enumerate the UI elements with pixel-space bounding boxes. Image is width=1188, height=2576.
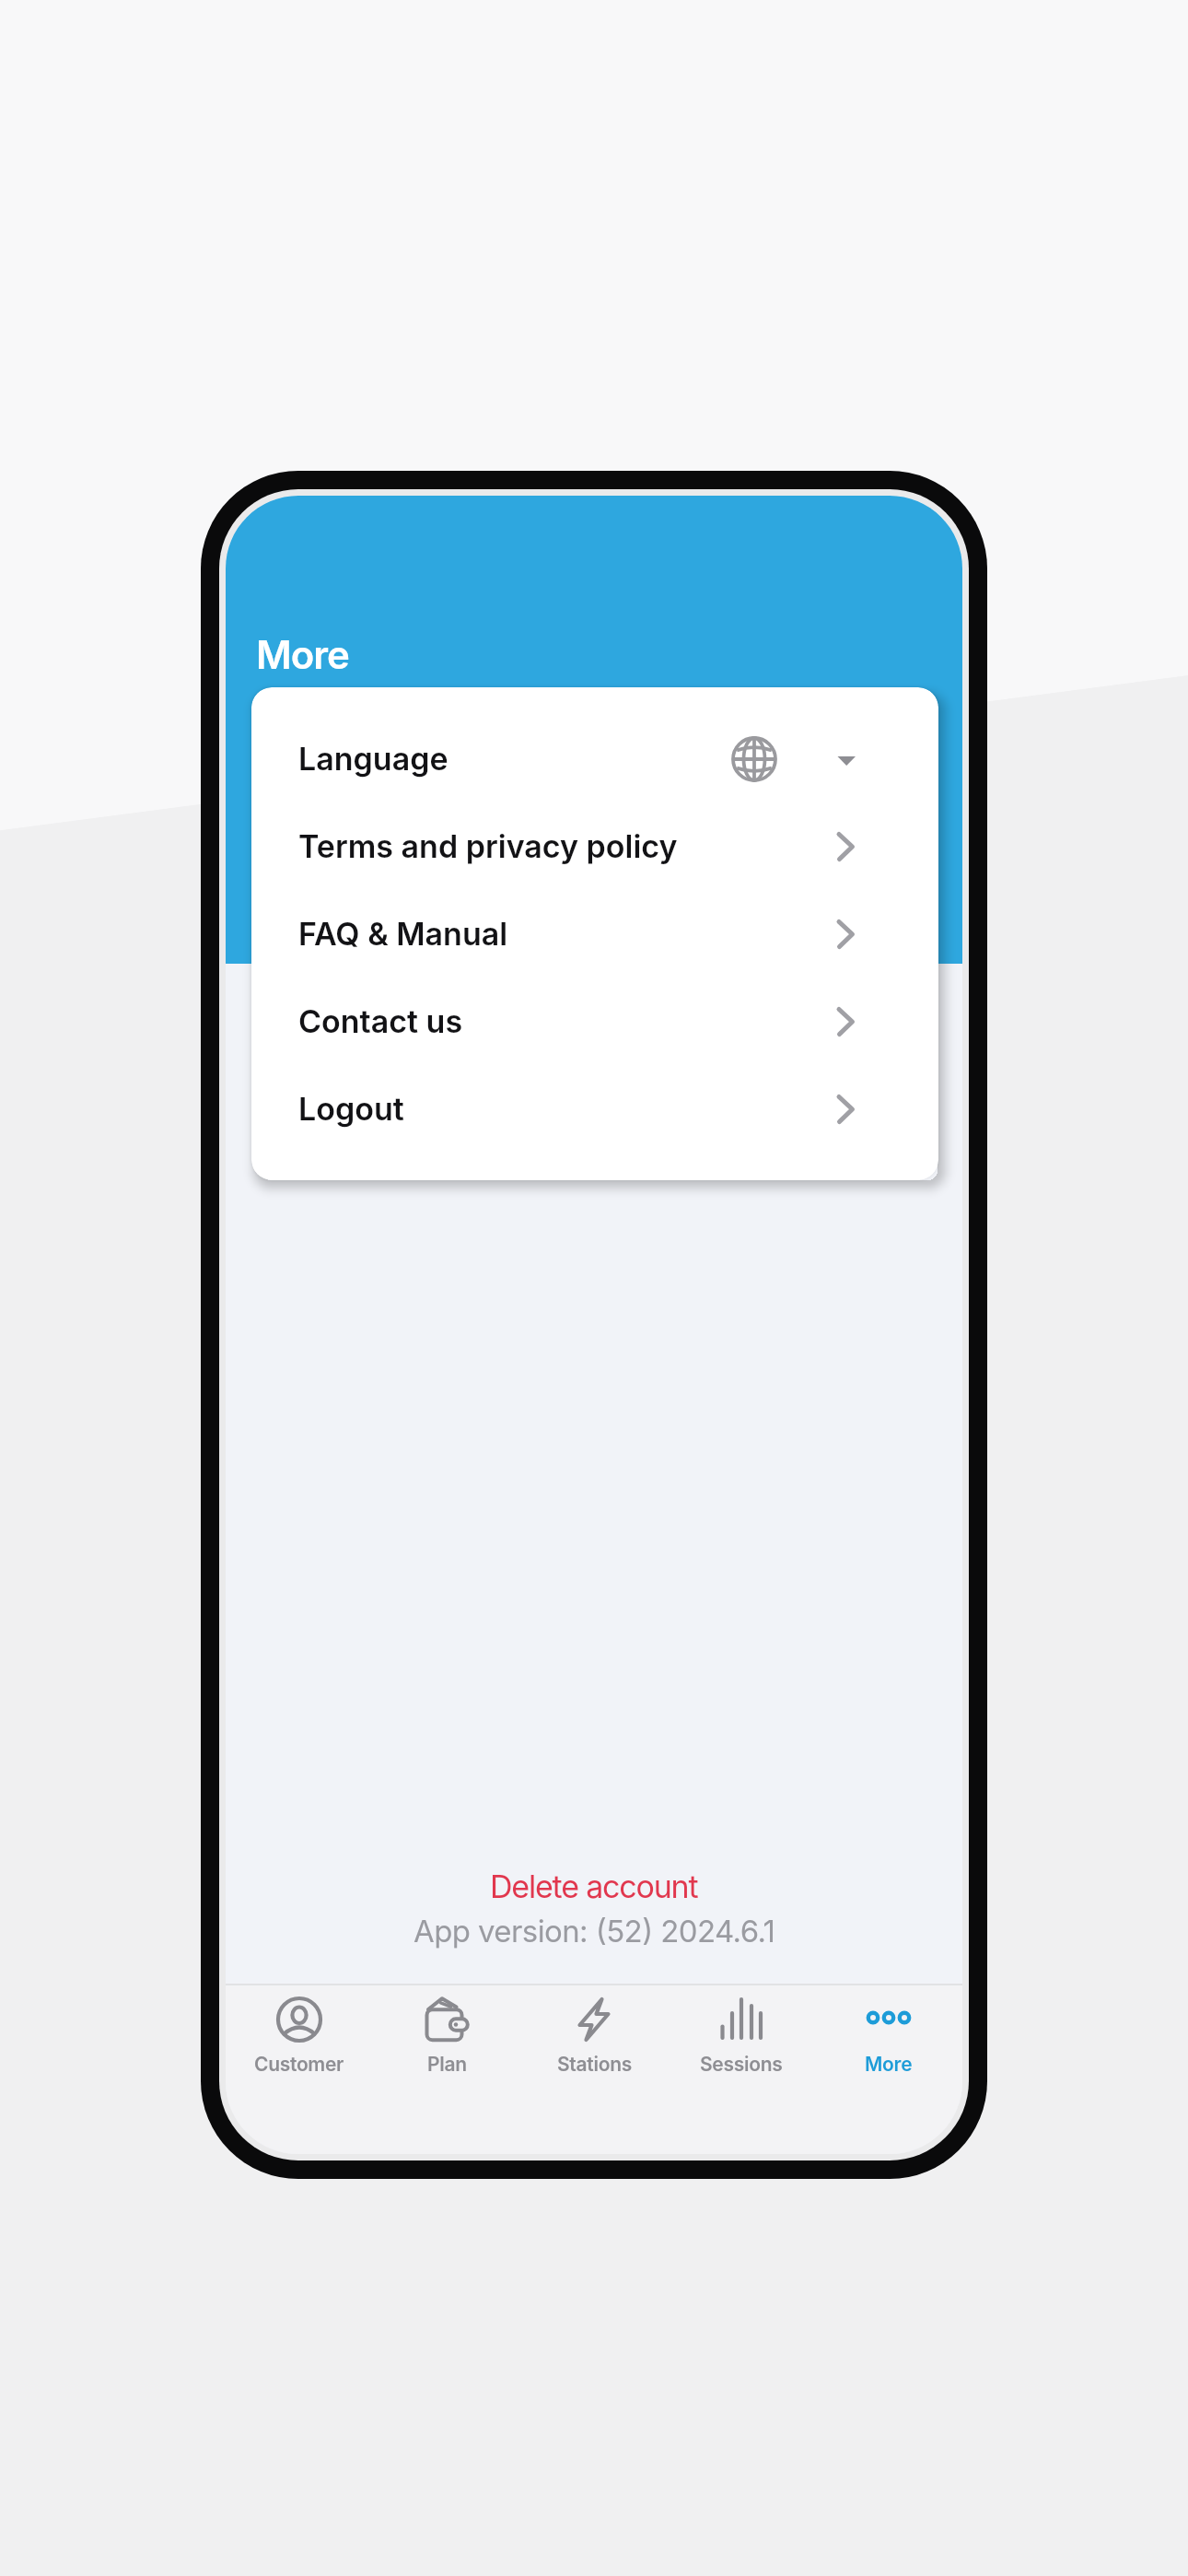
button[interactable]: More	[815, 1985, 962, 2154]
staticText: FAQ & Manual	[298, 915, 508, 953]
button[interactable]: Delete account	[226, 1863, 962, 1909]
staticText: Terms and privacy policy	[298, 827, 678, 865]
button[interactable]: Stations	[520, 1985, 668, 2154]
staticText: Language	[298, 740, 448, 778]
button[interactable]: Terms and privacy policy	[251, 802, 938, 890]
button[interactable]: Language	[251, 715, 938, 802]
button[interactable]: FAQ & Manual	[251, 890, 938, 978]
staticText: Contact us	[298, 1002, 463, 1040]
button[interactable]: Sessions	[668, 1985, 815, 2154]
button[interactable]: Logout	[251, 1065, 938, 1153]
staticText: Plan	[427, 2053, 467, 2076]
button[interactable]: Customer	[226, 1985, 373, 2154]
staticText: Delete account	[490, 1868, 698, 1905]
staticText: Logout	[298, 1090, 404, 1128]
staticText: Sessions	[700, 2053, 783, 2076]
staticText: More	[865, 2053, 913, 2076]
staticText: Customer	[254, 2053, 344, 2076]
staticText: Stations	[557, 2053, 632, 2076]
staticText: App version: (52) 2024.6.1	[413, 1913, 775, 1950]
button[interactable]: Contact us	[251, 978, 938, 1065]
button[interactable]: Plan	[373, 1985, 520, 2154]
staticText: More	[256, 631, 349, 678]
